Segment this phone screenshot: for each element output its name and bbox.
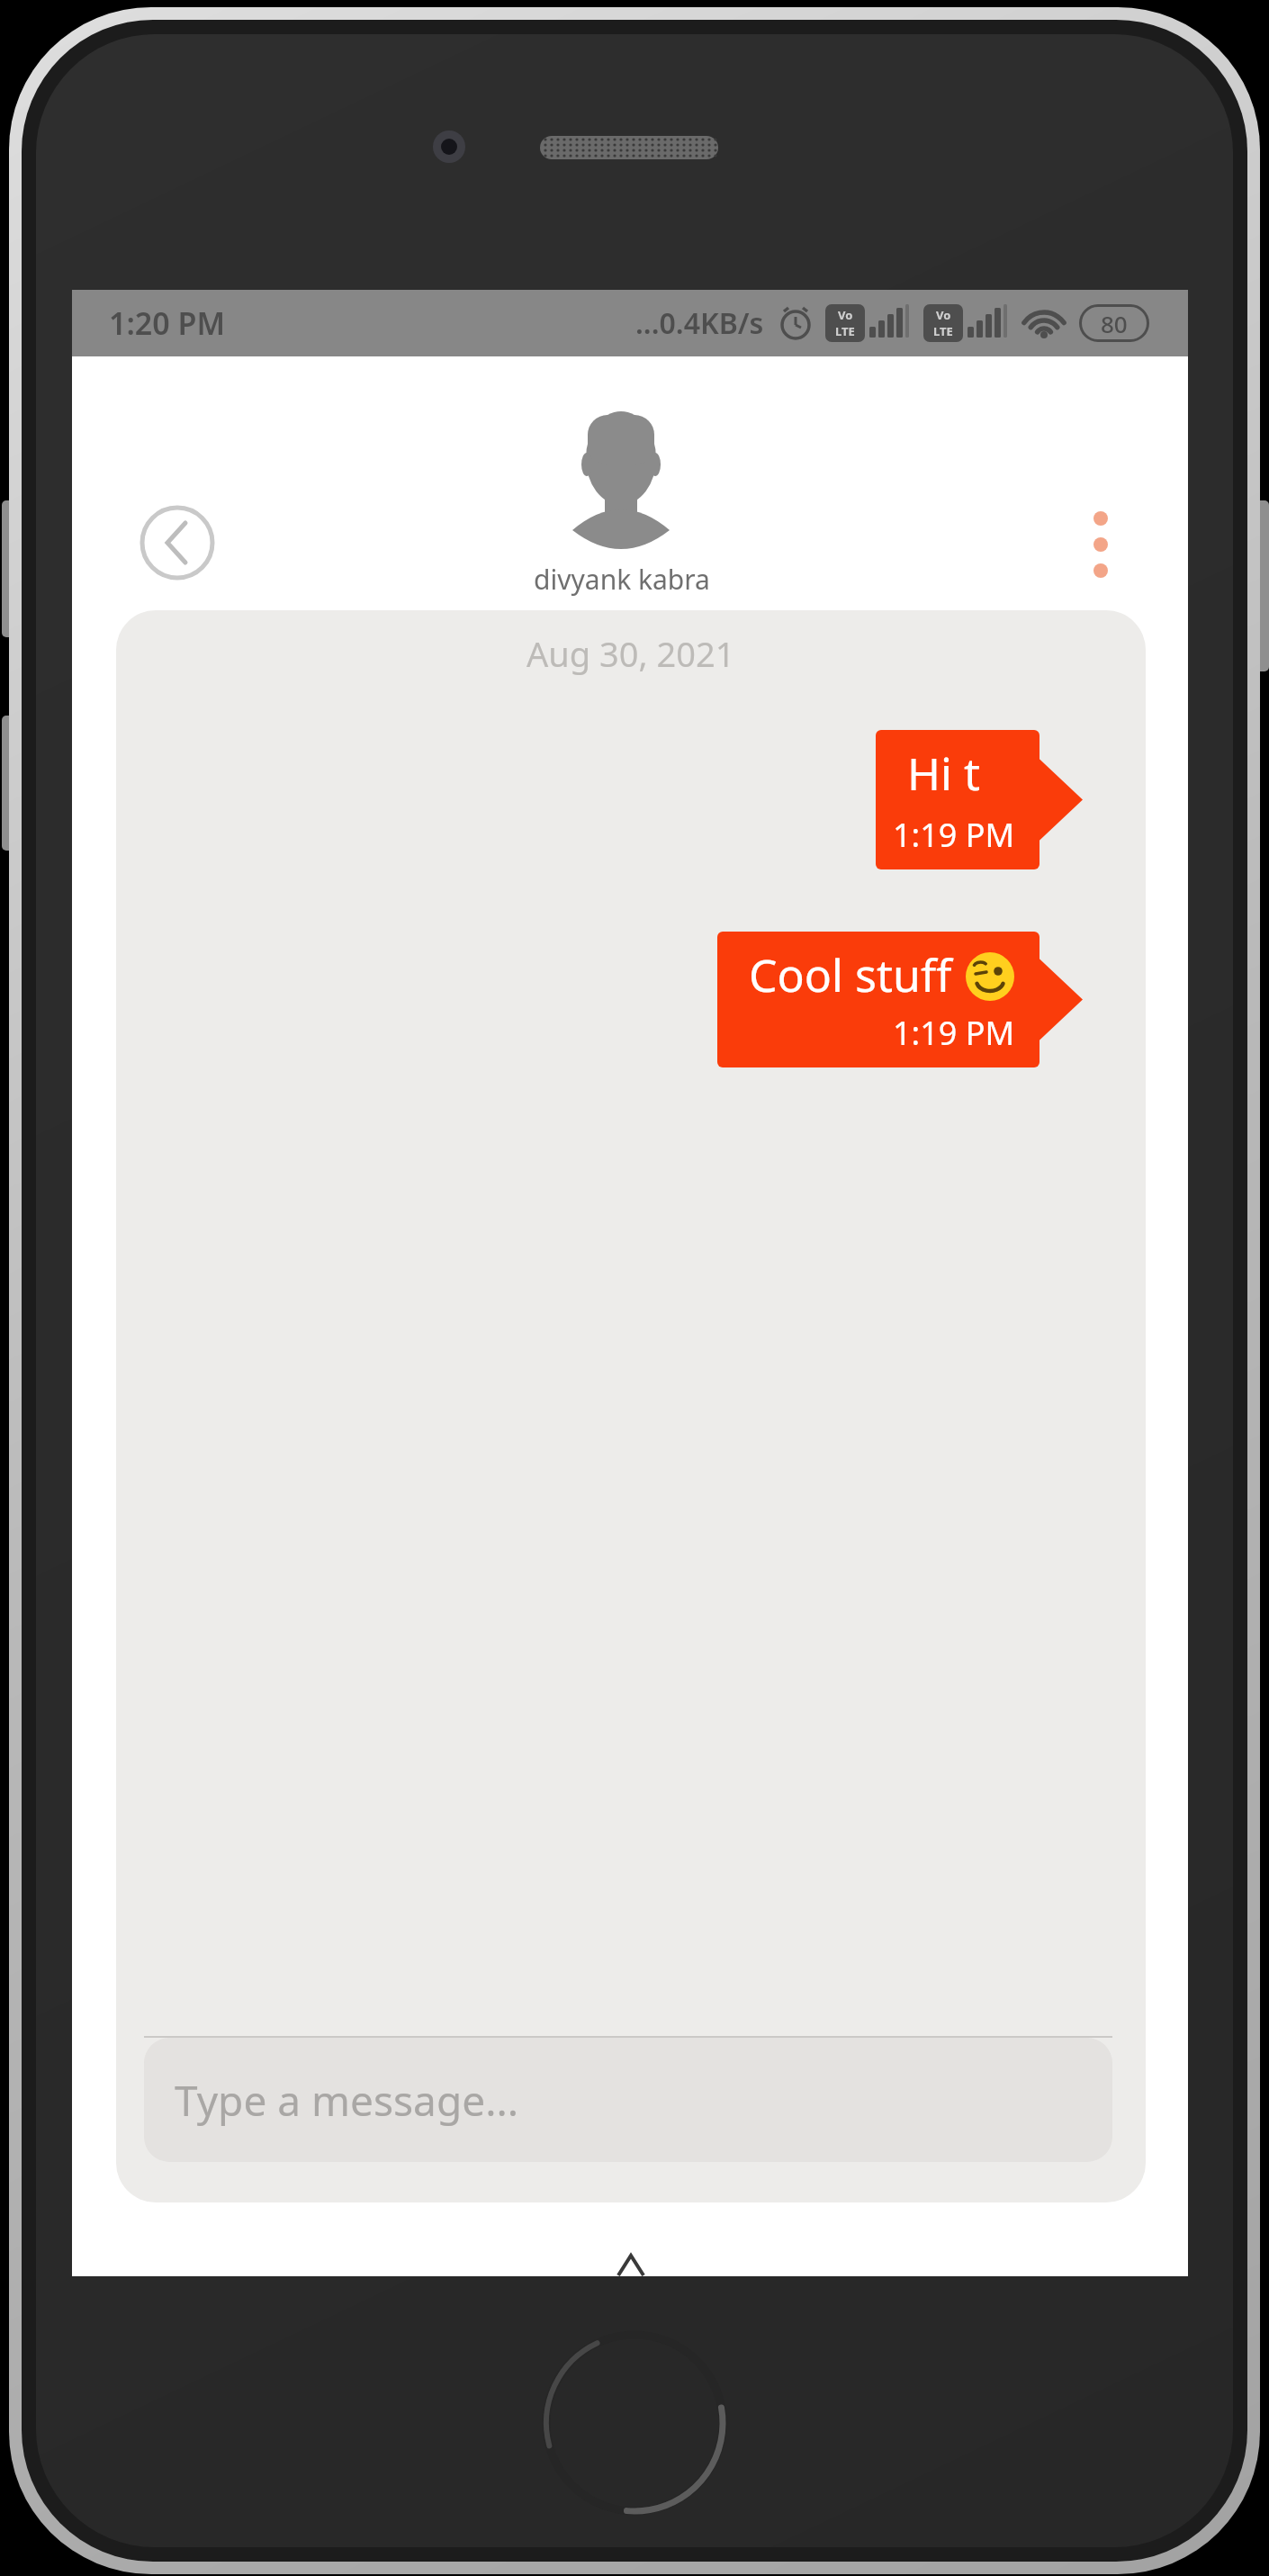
staticText: Vo [838,307,853,323]
staticText: divyank kabra [514,561,730,598]
button[interactable] [137,502,218,583]
button[interactable] [1076,511,1125,610]
staticText: Aug 30, 2021 [526,630,735,677]
staticText: Type a message... [175,2072,519,2129]
staticText: 1:19 PM [893,1011,1015,1055]
button[interactable]: Hi t [876,730,1084,869]
staticText: Hi t [907,743,980,804]
staticText: LTE [933,323,953,339]
staticText: Vo [936,307,951,323]
button[interactable]: Type a message... [144,2038,1112,2162]
staticText: Cool stuff [749,944,952,1005]
staticText: LTE [835,323,855,339]
staticText: 80 [1101,308,1128,339]
staticText: ...0.4KB/s [635,303,764,343]
button[interactable]: Cool stuff [717,932,1084,1067]
staticText: 1:20 PM [109,302,226,344]
staticText: 1:19 PM [893,813,1015,857]
